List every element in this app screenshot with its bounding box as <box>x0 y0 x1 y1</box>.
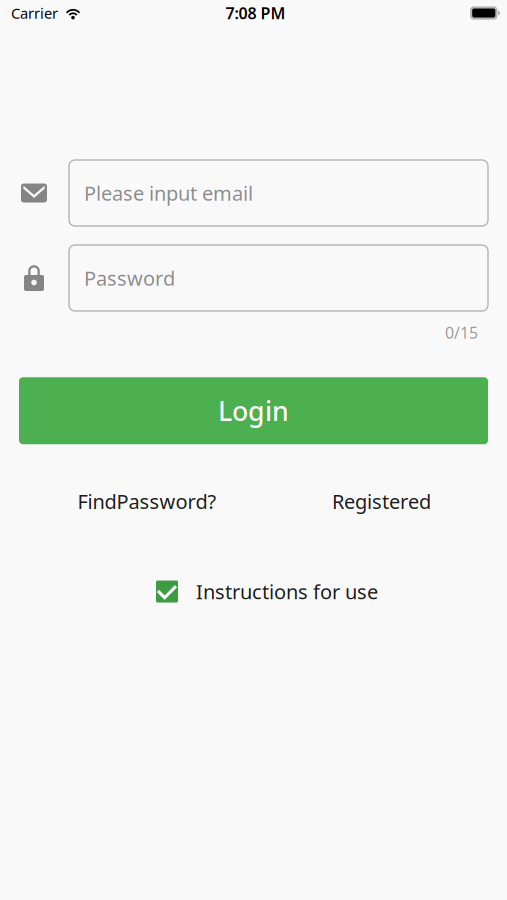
button[interactable]: Instructions for use <box>156 578 378 605</box>
button[interactable]: Login <box>19 377 488 444</box>
staticText: Please input email <box>84 180 253 206</box>
staticText: Password <box>84 265 175 291</box>
staticText: Login <box>218 393 289 428</box>
staticText: FindPassword? <box>77 488 216 515</box>
staticText: 0/15 <box>445 322 478 343</box>
button[interactable]: Please input email <box>69 160 488 226</box>
button[interactable]: Password <box>19 245 49 311</box>
staticText: 7:08 PM <box>225 2 285 24</box>
staticText: Carrier <box>11 3 58 23</box>
staticText: Registered <box>332 488 431 515</box>
button[interactable]: Email <box>19 160 49 226</box>
staticText: Instructions for use <box>196 578 378 605</box>
button[interactable]: Password <box>69 245 488 311</box>
button[interactable]: Registered <box>275 484 488 518</box>
button[interactable]: FindPassword? <box>19 484 275 518</box>
